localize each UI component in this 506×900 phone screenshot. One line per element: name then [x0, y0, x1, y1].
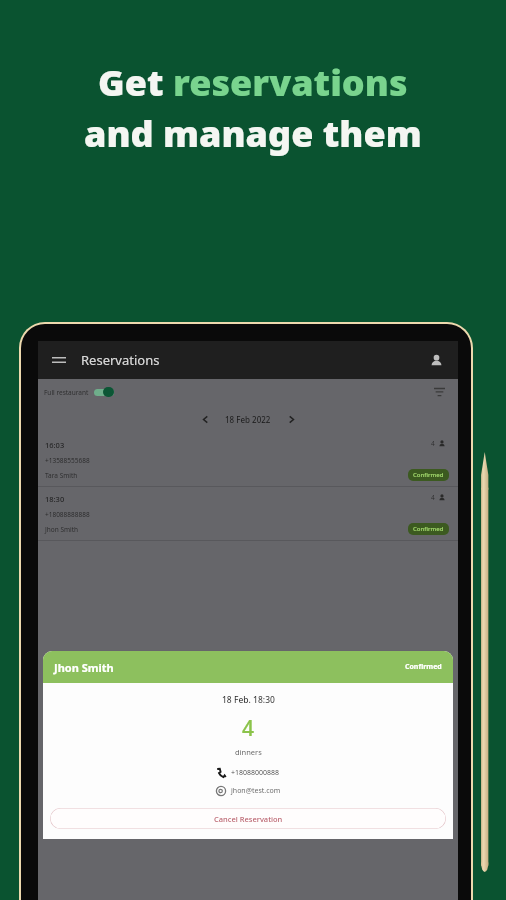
- staticText: Confirmed: [413, 525, 444, 533]
- staticText: +18088000888: [231, 768, 280, 778]
- staticText: 18 Feb. 18:30: [222, 694, 275, 706]
- staticText: Jhon Smith: [45, 525, 79, 534]
- staticText: Full restaurant: [44, 388, 89, 397]
- staticText: Cancel Reservation: [214, 814, 283, 824]
- button[interactable]: Open navigation menu: [49, 350, 69, 370]
- staticText: reservations: [173, 58, 408, 107]
- button[interactable]: +18088000888: [216, 768, 280, 778]
- staticText: jhon@test.com: [231, 786, 281, 796]
- staticText: 4: [242, 714, 255, 743]
- staticText: 18 Feb 2022: [225, 414, 271, 425]
- staticText: Confirmed: [405, 662, 442, 672]
- button[interactable]: Filter: [430, 383, 448, 401]
- staticText: 18:30: [45, 494, 65, 504]
- staticText: 4: [431, 493, 435, 502]
- staticText: +18088888888: [45, 510, 90, 519]
- staticText: and manage them: [84, 109, 422, 158]
- staticText: Tara Smith: [45, 471, 78, 480]
- staticText: Confirmed: [413, 471, 444, 479]
- staticText: 16:03: [45, 440, 65, 450]
- staticText: Get: [98, 58, 173, 107]
- button[interactable]: Next day: [281, 409, 301, 429]
- button[interactable]: 16:03: [38, 433, 458, 487]
- staticText: Reservations: [81, 351, 160, 369]
- button[interactable]: 18:30: [38, 487, 458, 541]
- button[interactable]: Cancel Reservation: [50, 808, 446, 829]
- staticText: +13588555688: [45, 456, 90, 465]
- staticText: dinners: [235, 747, 262, 757]
- button[interactable]: jhon@test.com: [216, 786, 281, 796]
- staticText: 4: [431, 439, 435, 448]
- button[interactable]: Previous day: [195, 409, 215, 429]
- button[interactable]: Jhon Smith: [54, 651, 442, 683]
- staticText: Jhon Smith: [54, 660, 114, 675]
- button[interactable]: Account: [425, 349, 447, 371]
- button[interactable]: Full restaurant: [44, 387, 114, 397]
